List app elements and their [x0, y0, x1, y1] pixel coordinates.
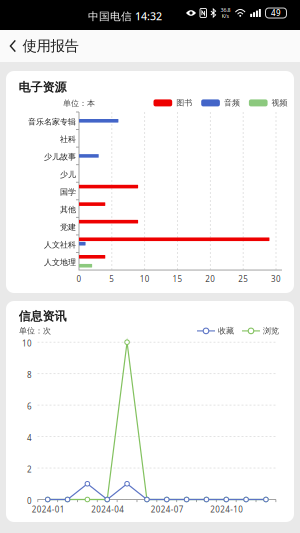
- button[interactable]: 使用报告: [0, 30, 90, 62]
- staticText: 2024-07: [151, 504, 184, 515]
- staticText: K/s: [221, 12, 229, 20]
- staticText: 党建: [60, 222, 76, 232]
- staticText: 25: [238, 273, 248, 284]
- staticText: 图书: [176, 98, 192, 108]
- staticText: 社科: [60, 134, 76, 144]
- staticText: 音频: [224, 98, 240, 108]
- staticText: 4: [27, 433, 32, 443]
- staticText: 人文地理: [44, 257, 76, 267]
- staticText: 浏览: [263, 326, 279, 336]
- staticText: 2024-10: [210, 504, 243, 515]
- staticText: 电子资源: [18, 80, 66, 95]
- staticText: 少儿: [60, 170, 76, 179]
- staticText: 10: [140, 273, 150, 284]
- staticText: 视频: [272, 98, 288, 108]
- staticText: 收藏: [218, 326, 234, 336]
- staticText: 中国电信 14:32: [88, 9, 162, 23]
- staticText: 其他: [60, 205, 76, 214]
- staticText: 0: [27, 495, 32, 506]
- staticText: 单位：次: [19, 326, 51, 336]
- staticText: 8: [27, 370, 32, 380]
- staticText: 国学: [60, 187, 76, 197]
- staticText: 少儿故事: [44, 152, 76, 162]
- staticText: 15: [172, 273, 182, 284]
- staticText: 5: [109, 273, 114, 284]
- staticText: 信息资讯: [18, 309, 66, 324]
- staticText: 20: [205, 273, 215, 284]
- staticText: 使用报告: [22, 37, 78, 55]
- staticText: 音乐名家专辑: [28, 117, 76, 127]
- staticText: 人文社科: [44, 240, 76, 250]
- staticText: 2024-04: [91, 504, 124, 515]
- staticText: 49: [271, 8, 281, 18]
- staticText: 2: [27, 464, 32, 475]
- staticText: 6: [27, 401, 32, 412]
- staticText: 2024-01: [32, 504, 65, 515]
- staticText: 单位：本: [63, 98, 95, 108]
- staticText: 36.8: [220, 6, 230, 13]
- staticText: 0: [76, 273, 81, 284]
- staticText: 10: [22, 338, 32, 349]
- staticText: 30: [271, 273, 281, 284]
